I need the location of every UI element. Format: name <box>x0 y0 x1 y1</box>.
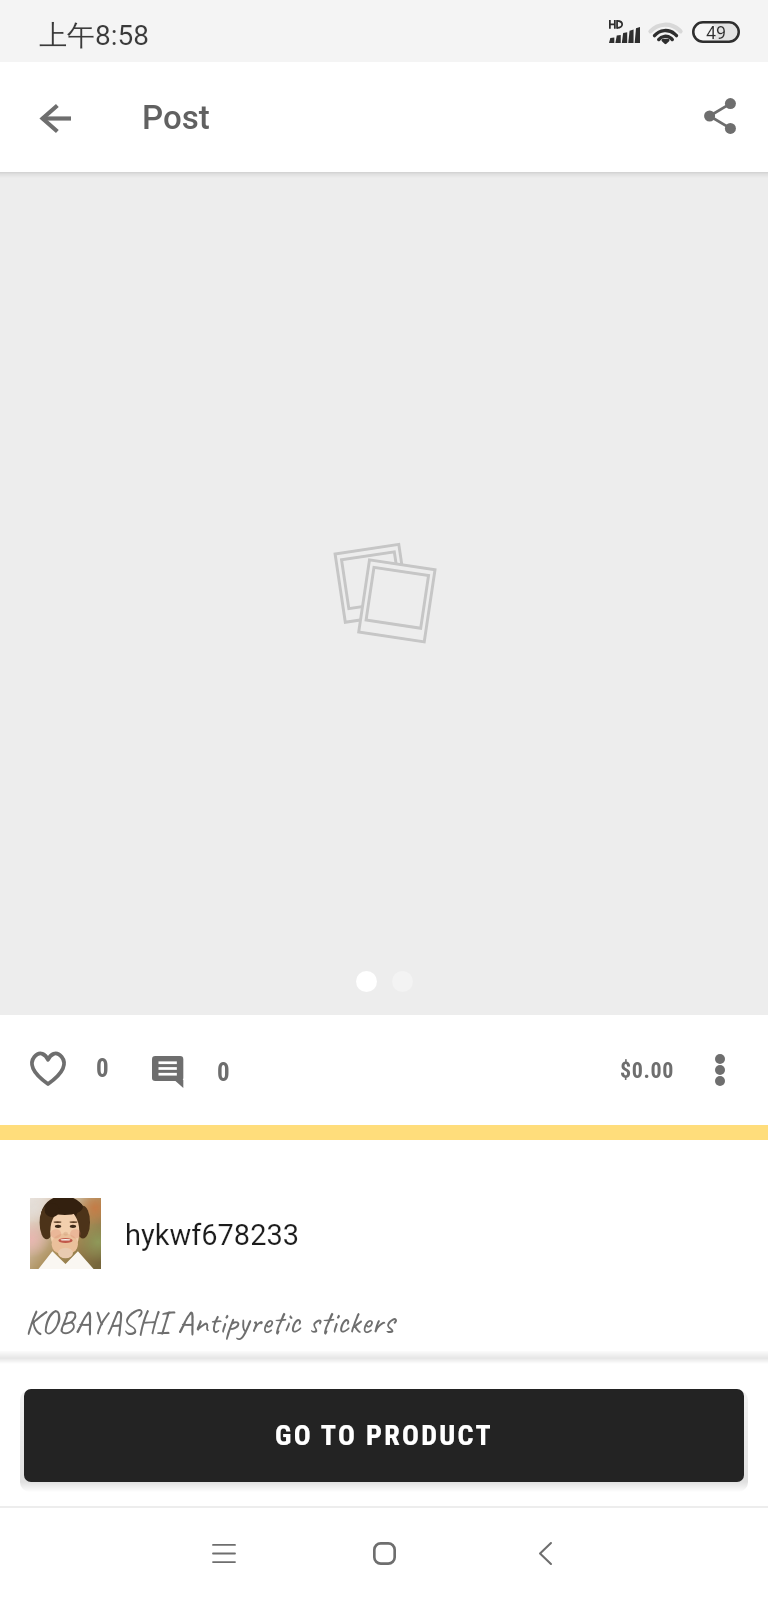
button[interactable]: hykwf678233 <box>0 1140 768 1211</box>
button[interactable]: 0 <box>14 1035 123 1101</box>
staticText: 49 <box>706 22 727 43</box>
button[interactable]: Share <box>688 84 752 148</box>
staticText: KOBAYASHI Antipyretic stickers <box>25 1301 395 1343</box>
staticText: 0 <box>96 1054 109 1083</box>
staticText: $0.00 <box>620 1058 674 1084</box>
staticText: GO TO PRODUCT <box>275 1419 493 1452</box>
button[interactable]: Back <box>505 1508 585 1599</box>
staticText: hykwf678233 <box>125 1218 300 1252</box>
button[interactable]: Recent apps <box>184 1508 264 1599</box>
button[interactable]: More options <box>691 1030 749 1110</box>
button[interactable]: Back <box>23 86 87 150</box>
staticText: 0 <box>217 1058 230 1087</box>
button[interactable]: Home <box>344 1508 424 1599</box>
button[interactable]: 0 <box>138 1040 244 1104</box>
staticText: Post <box>142 98 210 137</box>
button[interactable]: GO TO PRODUCT <box>24 1389 744 1482</box>
staticText: 上午8:58 <box>39 18 149 53</box>
